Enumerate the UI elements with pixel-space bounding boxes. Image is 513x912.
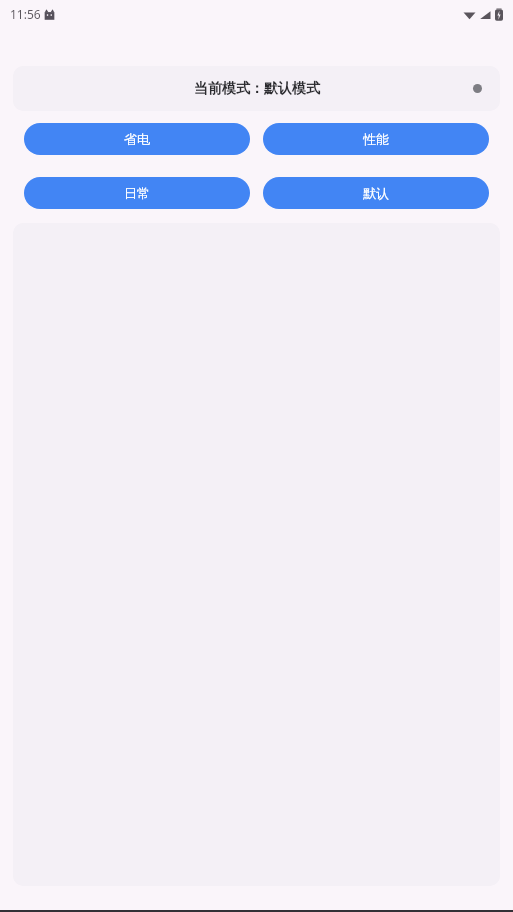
button[interactable]: 性能: [263, 123, 489, 155]
staticText: 性能: [363, 131, 389, 147]
staticText: 11:56: [10, 6, 41, 22]
button[interactable]: 省电: [24, 123, 250, 155]
staticText: 省电: [124, 131, 150, 147]
staticText: 当前模式：默认模式: [194, 80, 320, 98]
staticText: 日常: [124, 185, 150, 201]
button[interactable]: 日常: [24, 177, 250, 209]
button[interactable]: 默认: [263, 177, 489, 209]
button[interactable]: 当前模式：默认模式: [13, 66, 500, 111]
staticText: 默认: [363, 185, 389, 201]
